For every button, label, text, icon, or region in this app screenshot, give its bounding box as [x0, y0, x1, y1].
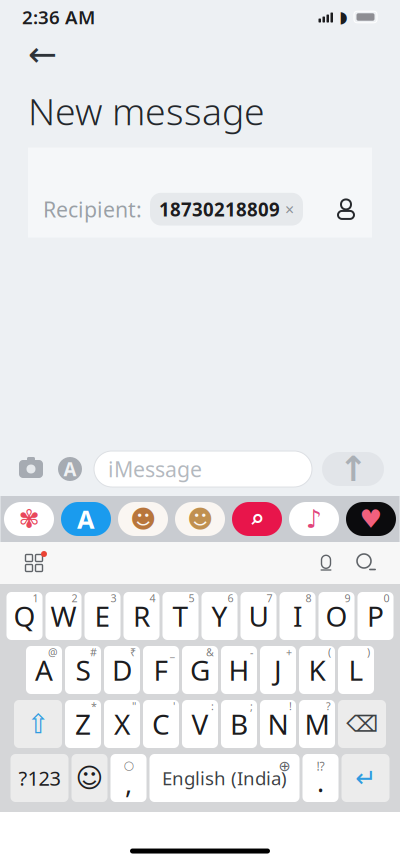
button[interactable]: Photos	[0, 496, 57, 542]
staticText: ☻	[130, 505, 156, 533]
staticText: O	[325, 597, 347, 635]
button[interactable]: Q	[6, 592, 42, 640]
staticText: 5	[188, 591, 194, 605]
staticText: M	[304, 705, 329, 743]
staticText: X	[114, 705, 130, 743]
staticText: iMessage	[108, 455, 202, 483]
staticText: 2	[71, 591, 77, 605]
staticText: ✾	[18, 505, 39, 533]
staticText: ♥	[359, 505, 382, 533]
button[interactable]: Camera	[16, 454, 46, 484]
staticText: ○	[123, 758, 133, 772]
button[interactable]: K	[299, 646, 335, 694]
staticText: V	[191, 705, 208, 743]
staticText: ⇧	[27, 709, 49, 739]
staticText: T	[172, 597, 188, 635]
staticText: -	[250, 645, 253, 659]
staticText: J	[274, 651, 282, 689]
staticText: 6	[227, 591, 233, 605]
button[interactable]: Memoji	[114, 496, 171, 542]
staticText: (	[328, 645, 331, 659]
button[interactable]: Backspace	[338, 700, 386, 748]
button[interactable]: S	[65, 646, 101, 694]
button[interactable]: V	[182, 700, 218, 748]
button[interactable]: D	[104, 646, 140, 694]
button[interactable]: Music	[285, 496, 342, 542]
button[interactable]: Period	[302, 754, 338, 802]
button[interactable]: App Store	[57, 496, 114, 542]
button[interactable]: E	[84, 592, 120, 640]
button[interactable]: W	[45, 592, 81, 640]
button[interactable]: Keyboard features	[14, 543, 54, 583]
button[interactable]: F	[143, 646, 179, 694]
button[interactable]: Fitness	[342, 496, 399, 542]
staticText: C	[152, 705, 170, 743]
button[interactable]: G	[182, 646, 218, 694]
staticText: ↑	[338, 449, 367, 489]
staticText: ?123	[18, 765, 60, 791]
staticText: R	[133, 597, 150, 635]
staticText: U	[248, 597, 268, 635]
button[interactable]: A	[26, 646, 62, 694]
button[interactable]: Apps	[56, 455, 84, 483]
staticText: 7	[266, 591, 272, 605]
staticText: _	[170, 645, 175, 659]
button[interactable]: X	[104, 700, 140, 748]
button[interactable]: Search	[346, 543, 386, 583]
staticText: ◗	[339, 8, 347, 26]
button[interactable]: Enter	[341, 754, 389, 802]
button[interactable]: Emoji	[71, 754, 107, 802]
button[interactable]: I	[279, 592, 315, 640]
staticText: ?	[326, 699, 331, 713]
staticText: 4	[149, 591, 155, 605]
staticText: ,	[125, 765, 132, 801]
staticText: E	[94, 597, 110, 635]
button[interactable]: Comma	[110, 754, 146, 802]
button[interactable]: C	[143, 700, 179, 748]
button[interactable]: N	[260, 700, 296, 748]
staticText: F	[153, 651, 168, 689]
staticText: ;	[250, 699, 253, 713]
button[interactable]: Animoji	[171, 496, 228, 542]
button[interactable]: U	[240, 592, 276, 640]
button[interactable]: Images	[228, 496, 285, 542]
button[interactable]: M	[299, 700, 335, 748]
staticText: N	[267, 705, 288, 743]
staticText: :	[211, 699, 214, 713]
staticText: A	[77, 502, 95, 536]
staticText: ☻	[187, 505, 213, 533]
staticText: *	[91, 699, 97, 713]
button[interactable]: Y	[201, 592, 237, 640]
staticText: ⌕	[249, 505, 264, 533]
button[interactable]: J	[260, 646, 296, 694]
button[interactable]: P	[357, 592, 393, 640]
button[interactable]: Shift	[14, 700, 62, 748]
button[interactable]: Space, English (India)	[149, 754, 299, 802]
staticText: !?	[316, 758, 324, 774]
staticText: Z	[75, 705, 91, 743]
button[interactable]: R	[123, 592, 159, 640]
staticText: ⌫	[346, 711, 378, 737]
staticText: H	[228, 651, 249, 689]
staticText: )	[367, 645, 370, 659]
button[interactable]: O	[318, 592, 354, 640]
staticText: .	[317, 764, 324, 800]
button[interactable]: Voice input	[306, 543, 346, 583]
button[interactable]: Send	[322, 451, 384, 487]
button[interactable]: Back	[0, 34, 72, 74]
button[interactable]: T	[162, 592, 198, 640]
button[interactable]: B	[221, 700, 257, 748]
button[interactable]: Z	[65, 700, 101, 748]
button[interactable]: H	[221, 646, 257, 694]
staticText: @	[48, 645, 58, 659]
staticText: 0	[383, 591, 389, 605]
staticText: #	[90, 645, 97, 659]
button[interactable]: iMessage	[94, 451, 312, 487]
button[interactable]: L	[338, 646, 374, 694]
button[interactable]: Recipient:	[28, 154, 372, 232]
staticText: G	[190, 651, 210, 689]
staticText: ×	[285, 199, 294, 220]
staticText: Recipient:	[43, 195, 142, 223]
staticText: '	[173, 699, 175, 713]
button[interactable]: ?123	[10, 754, 68, 802]
